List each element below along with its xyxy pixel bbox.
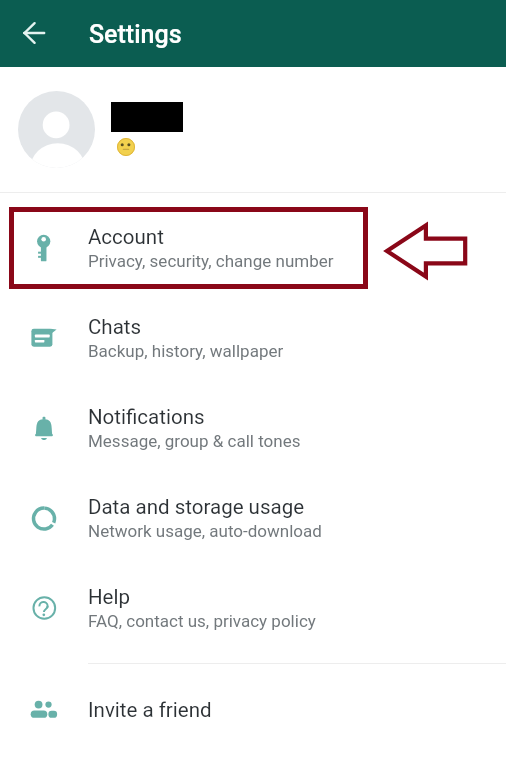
staticText: Backup, history, wallpaper [88, 341, 284, 361]
staticText: Message, group & call tones [88, 431, 301, 451]
button[interactable]: Notifications [0, 383, 506, 473]
button[interactable]: Back [11, 10, 57, 56]
staticText: Data and storage usage [88, 495, 305, 519]
staticText: Notifications [88, 405, 205, 429]
button[interactable]: Help [0, 563, 506, 653]
button[interactable]: Invite a friend [0, 665, 506, 755]
button[interactable]: Data and storage usage [0, 473, 506, 563]
button[interactable]: Chats [0, 293, 506, 383]
staticText: Network usage, auto-download [88, 521, 322, 541]
staticText: Account [88, 225, 164, 249]
staticText: FAQ, contact us, privacy policy [88, 611, 316, 631]
staticText: Chats [88, 315, 142, 339]
button[interactable] [0, 67, 506, 192]
staticText: Invite a friend [88, 698, 212, 722]
staticText: Help [88, 585, 130, 609]
staticText: Privacy, security, change number [88, 251, 334, 271]
staticText: Settings [89, 20, 182, 49]
button[interactable]: Account [0, 203, 506, 293]
